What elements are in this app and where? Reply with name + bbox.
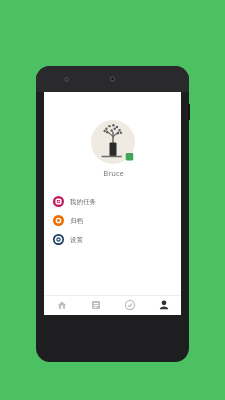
staticText: 设置 [70,236,83,244]
staticText: 我的任务 [70,198,96,206]
button[interactable]: 我的任务 [44,192,181,211]
staticText: 归档 [70,217,83,225]
staticText: Bruce [103,168,124,178]
button[interactable]: Profile [147,295,181,315]
button[interactable]: Bruce [44,120,181,178]
button[interactable]: Lists [79,295,113,315]
button[interactable]: 归档 [44,211,181,230]
button[interactable]: Home [44,295,79,315]
button[interactable]: Completed [113,295,147,315]
button[interactable]: 设置 [44,230,181,249]
